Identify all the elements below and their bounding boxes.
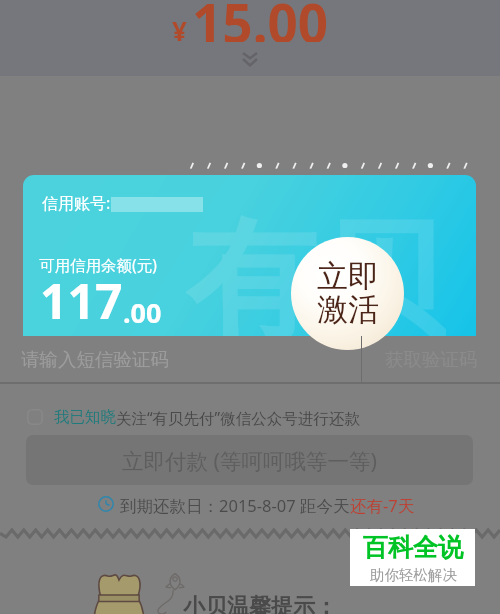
- button[interactable]: 立即付款 (等呵呵哦等一等): [26, 435, 473, 485]
- button[interactable]: 获取验证码: [362, 336, 500, 382]
- button[interactable]: Expand details: [235, 48, 265, 70]
- staticText: 还有-7天: [350, 494, 415, 514]
- staticText: 百科全说: [363, 532, 463, 563]
- staticText: 关注“有贝先付”微信公众号进行还款: [116, 407, 360, 428]
- button[interactable]: 我已知晓: [0, 402, 500, 432]
- staticText: 小贝温馨提示：: [183, 593, 337, 614]
- staticText: 15.00: [192, 0, 329, 42]
- staticText: ¥: [172, 13, 187, 48]
- staticText: 信用账号:: [42, 192, 111, 214]
- staticText: 立即付款 (等呵呵哦等一等): [122, 446, 377, 475]
- staticText: 有贝: [186, 201, 446, 336]
- staticText: 立即 激活: [317, 257, 379, 330]
- staticText: 助你轻松解决: [370, 566, 457, 584]
- staticText: .00: [123, 294, 162, 331]
- staticText: 我已知晓: [54, 407, 116, 427]
- button[interactable]: 请输入短信验证码: [0, 336, 361, 382]
- button[interactable]: 立即 激活: [291, 237, 404, 350]
- staticText: 117: [40, 268, 123, 333]
- staticText: 获取验证码: [385, 348, 478, 371]
- staticText: 请输入短信验证码: [21, 348, 169, 371]
- staticText: 到期还款日：2015-8-07 距今天: [120, 494, 350, 514]
- staticText: 可用信用余额(元): [39, 254, 157, 275]
